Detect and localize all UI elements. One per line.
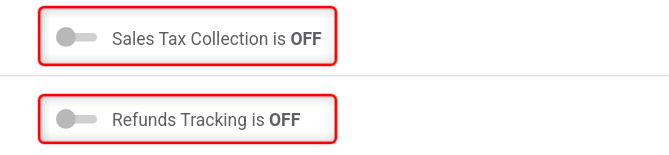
button[interactable]: Refunds Tracking switch, off <box>56 109 98 129</box>
button[interactable]: Sales Tax Collection switch, off <box>56 27 98 47</box>
staticText: Refunds Tracking is OFF <box>112 110 301 131</box>
staticText: Sales Tax Collection is OFF <box>112 29 322 50</box>
button[interactable]: Sales Tax Collection switch, off <box>38 6 337 66</box>
button[interactable]: Refunds Tracking switch, off <box>38 94 337 144</box>
